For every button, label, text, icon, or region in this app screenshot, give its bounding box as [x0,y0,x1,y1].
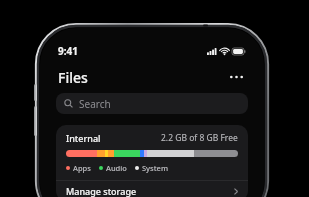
staticText: Manage storage [66,185,137,197]
staticText: Files [58,68,88,87]
staticText: 9:41 [58,44,78,58]
staticText: Audio [106,163,127,173]
button[interactable]: Search [56,93,248,114]
staticText: Apps [73,163,91,173]
other: Volume up [34,84,37,101]
staticText: Internal [66,132,101,144]
staticText: Search [79,97,111,111]
staticText: 2.2 GB of 8 GB Free [161,132,238,144]
button[interactable]: More options [226,67,246,87]
other: Volume down [34,106,37,136]
button[interactable]: Manage storage [56,181,248,197]
staticText: System [142,163,169,173]
